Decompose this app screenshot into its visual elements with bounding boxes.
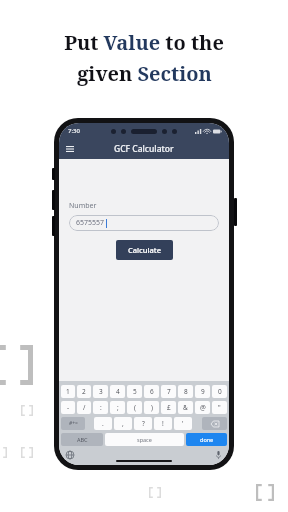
staticText: 1 bbox=[66, 387, 70, 396]
button[interactable]: 5 bbox=[127, 385, 142, 398]
button[interactable]: 6 bbox=[144, 385, 159, 398]
staticText: @ bbox=[200, 403, 206, 412]
button[interactable]: 2 bbox=[77, 385, 91, 398]
button[interactable]: ABC bbox=[61, 433, 103, 446]
button[interactable]: 9 bbox=[195, 385, 210, 398]
staticText: : bbox=[100, 403, 102, 412]
staticText: ABC bbox=[77, 436, 88, 443]
button[interactable]: Calculate bbox=[116, 240, 173, 260]
button[interactable]: " bbox=[212, 401, 227, 414]
button[interactable]: & bbox=[178, 401, 193, 414]
button[interactable]: ) bbox=[144, 401, 159, 414]
button[interactable]: Change keyboard language bbox=[65, 450, 75, 460]
staticText: . bbox=[102, 419, 104, 428]
staticText: 7 bbox=[167, 387, 171, 396]
staticText: 5 bbox=[133, 387, 137, 396]
button[interactable]: space bbox=[105, 433, 184, 446]
staticText: given Section bbox=[77, 60, 212, 87]
staticText: ( bbox=[134, 403, 136, 412]
button[interactable]: : bbox=[93, 401, 108, 414]
button[interactable]: . bbox=[94, 417, 112, 430]
staticText: £ bbox=[167, 403, 171, 412]
button[interactable]: - bbox=[61, 401, 75, 414]
staticText: 3 bbox=[99, 387, 103, 396]
staticText: 2 bbox=[82, 387, 86, 396]
staticText: 9 bbox=[201, 387, 205, 396]
staticText: ? bbox=[142, 419, 145, 428]
staticText: ! bbox=[162, 419, 164, 428]
staticText: 7:30 bbox=[68, 127, 80, 135]
button[interactable]: ! bbox=[154, 417, 172, 430]
button[interactable]: ' bbox=[174, 417, 192, 430]
button[interactable]: ; bbox=[110, 401, 125, 414]
button[interactable]: 0 bbox=[212, 385, 227, 398]
button[interactable]: / bbox=[77, 401, 91, 414]
staticText: Put Value to the bbox=[64, 29, 224, 56]
button[interactable]: done bbox=[186, 433, 227, 446]
button[interactable]: , bbox=[114, 417, 132, 430]
staticText: 0 bbox=[218, 387, 222, 396]
staticText: GCF Calculator bbox=[114, 143, 174, 155]
button[interactable]: Open navigation menu bbox=[63, 142, 77, 156]
button[interactable]: 1 bbox=[61, 385, 75, 398]
button[interactable]: 3 bbox=[93, 385, 108, 398]
button[interactable]: 7 bbox=[161, 385, 176, 398]
staticText: #+= bbox=[69, 420, 78, 427]
button[interactable]: Backspace bbox=[202, 417, 227, 430]
staticText: & bbox=[183, 403, 188, 412]
button[interactable]: Symbols bbox=[61, 417, 85, 430]
staticText: ) bbox=[151, 403, 153, 412]
button[interactable]: 4 bbox=[110, 385, 125, 398]
staticText: " bbox=[218, 403, 221, 412]
staticText: ' bbox=[182, 419, 184, 428]
staticText: 6575557 bbox=[76, 218, 105, 228]
staticText: , bbox=[122, 419, 124, 428]
staticText: - bbox=[67, 403, 70, 412]
staticText: Calculate bbox=[128, 245, 161, 255]
button[interactable]: £ bbox=[161, 401, 176, 414]
button[interactable]: Voice input bbox=[213, 450, 223, 460]
button[interactable]: @ bbox=[195, 401, 210, 414]
staticText: Number bbox=[69, 201, 97, 211]
button[interactable]: 8 bbox=[178, 385, 193, 398]
staticText: space bbox=[137, 436, 152, 443]
staticText: 4 bbox=[116, 387, 120, 396]
button[interactable]: 6575557 bbox=[69, 215, 219, 231]
staticText: 6 bbox=[150, 387, 154, 396]
staticText: 8 bbox=[184, 387, 188, 396]
button[interactable]: ? bbox=[134, 417, 152, 430]
staticText: ; bbox=[117, 403, 119, 412]
staticText: / bbox=[83, 403, 86, 412]
staticText: done bbox=[200, 436, 214, 443]
button[interactable]: ( bbox=[127, 401, 142, 414]
